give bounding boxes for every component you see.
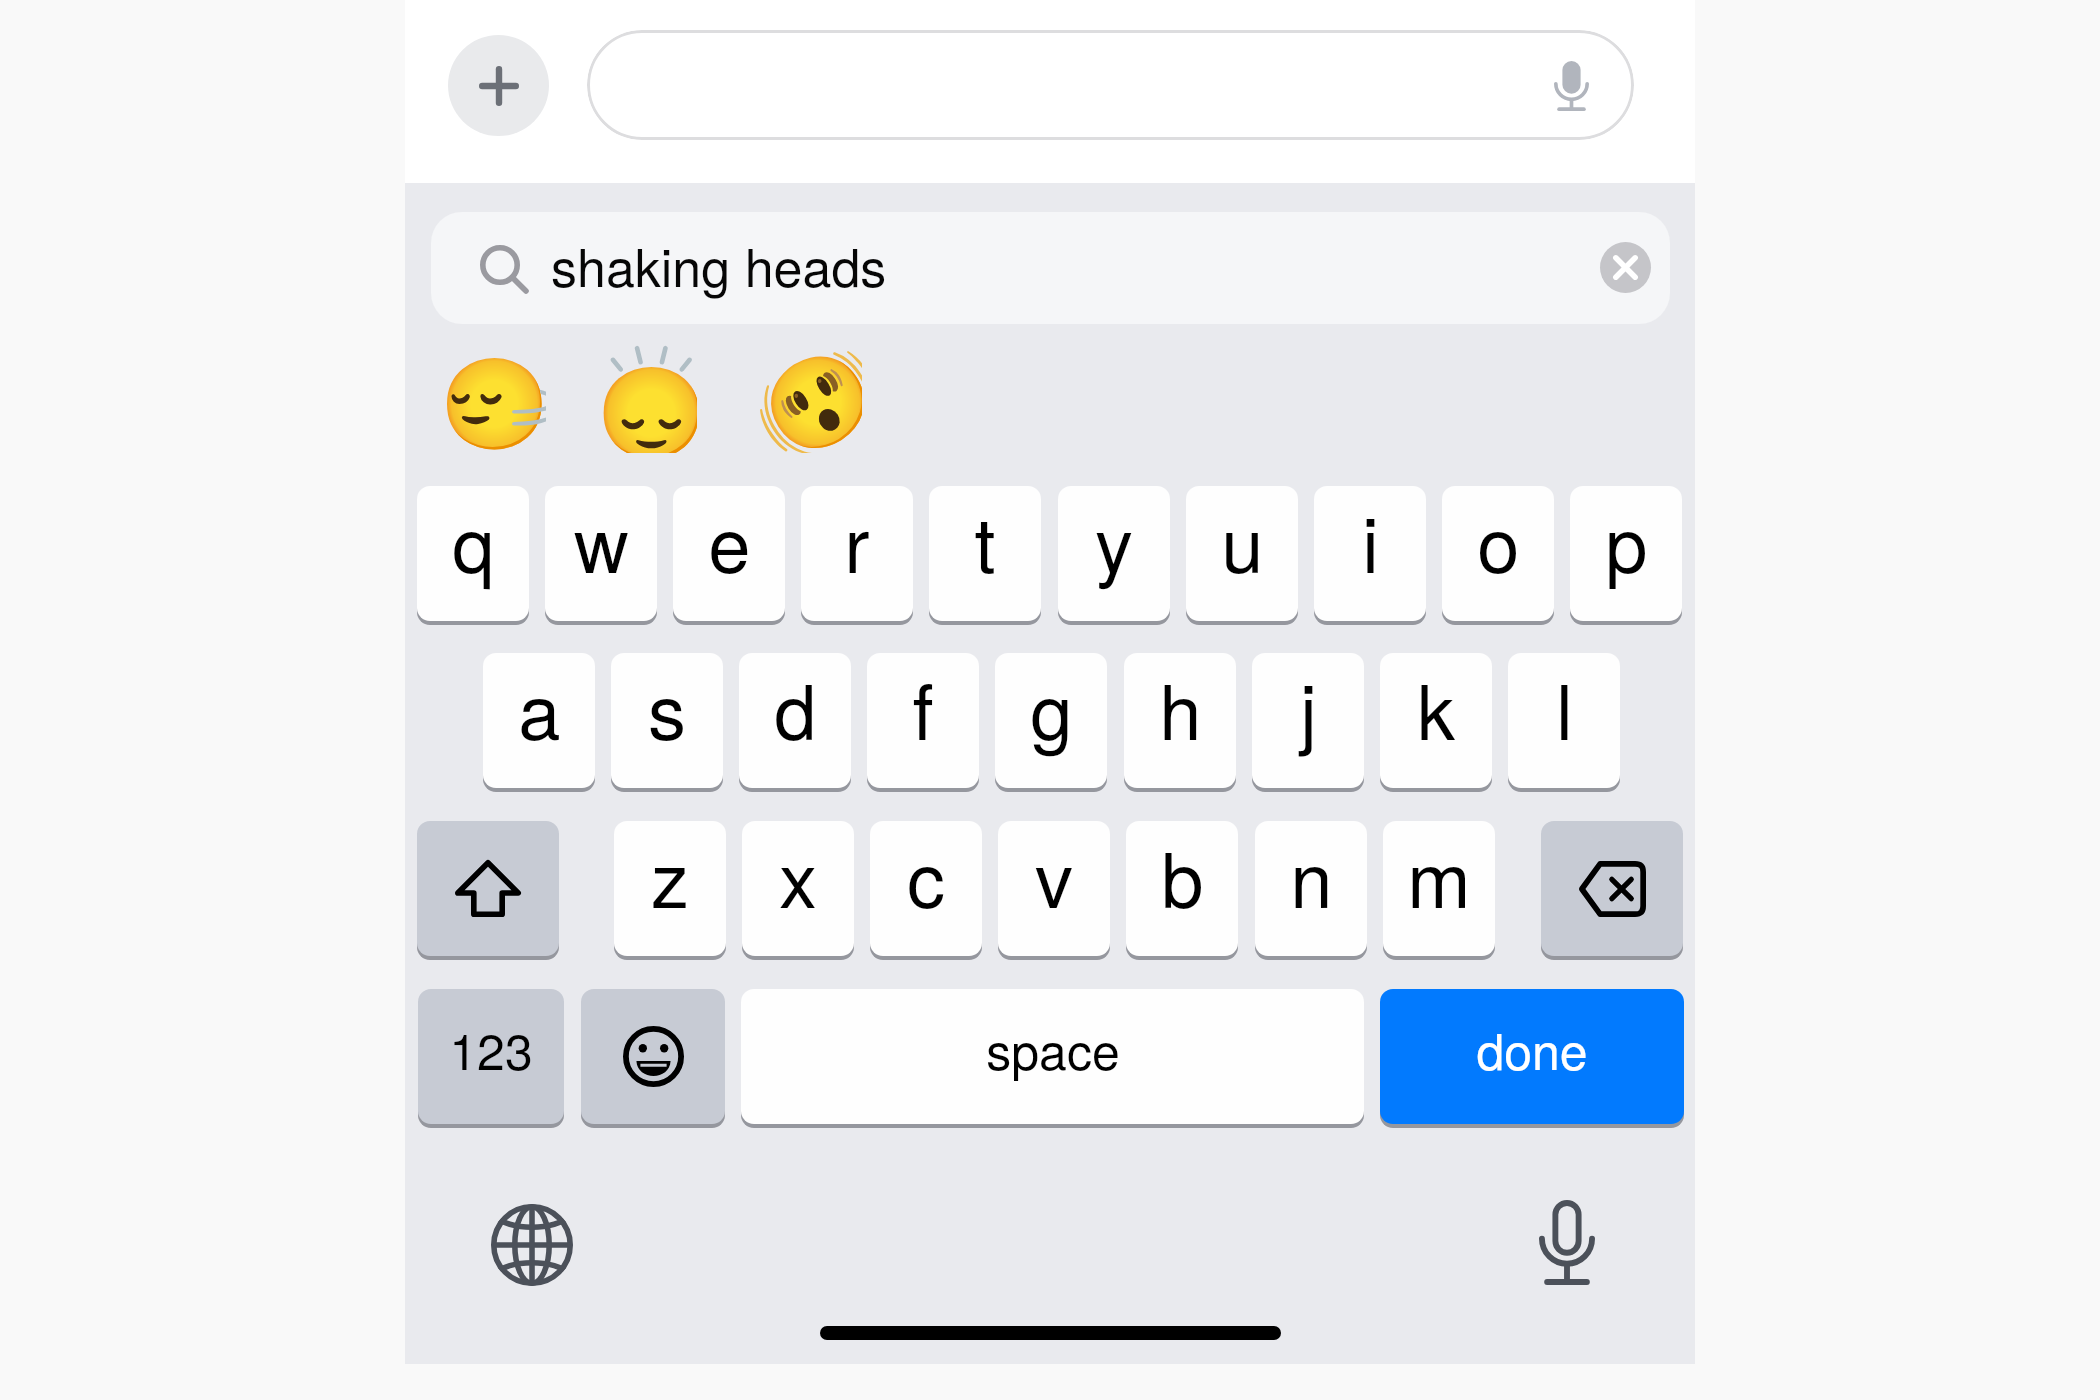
staticText: done [1476, 1013, 1588, 1085]
staticText: g [1030, 653, 1073, 762]
staticText: e [708, 486, 751, 595]
button[interactable]: w [545, 486, 657, 621]
button[interactable]: t [929, 486, 1041, 621]
button[interactable]: 🙂‍↕️ [589, 345, 697, 453]
button[interactable]: v [998, 821, 1110, 956]
staticText: a [518, 653, 561, 762]
button[interactable]: 🙂‍↔️ [438, 345, 546, 453]
button[interactable]: Change keyboard language [487, 1200, 577, 1290]
button[interactable]: done [1380, 989, 1684, 1124]
button[interactable]: i [1314, 486, 1426, 621]
button[interactable]: p [1570, 486, 1682, 621]
staticText: k [1417, 653, 1455, 762]
staticText: 🫨 [754, 345, 862, 453]
button[interactable]: n [1255, 821, 1367, 956]
staticText: p [1605, 486, 1648, 595]
staticText: y [1095, 486, 1133, 595]
button[interactable]: 123 [418, 989, 564, 1124]
staticText: m [1407, 821, 1471, 930]
button[interactable]: r [801, 486, 913, 621]
staticText: n [1290, 821, 1333, 930]
button[interactable]: f [867, 653, 979, 788]
button[interactable]: shaking heads [431, 212, 1670, 324]
staticText: u [1221, 486, 1264, 595]
button[interactable]: z [614, 821, 726, 956]
staticText: l [1556, 653, 1573, 762]
button[interactable]: g [995, 653, 1107, 788]
button[interactable]: space [741, 989, 1364, 1124]
button[interactable]: Dictate [1522, 1197, 1612, 1287]
staticText: i [1362, 486, 1379, 595]
staticText: c [907, 821, 945, 930]
button[interactable]: j [1252, 653, 1364, 788]
staticText: space [986, 1013, 1120, 1085]
staticText: w [574, 486, 629, 595]
staticText: x [779, 821, 817, 930]
staticText: shaking heads [551, 227, 887, 301]
button[interactable]: a [483, 653, 595, 788]
button[interactable]: m [1383, 821, 1495, 956]
button[interactable]: Clear search [1599, 241, 1651, 293]
staticText: r [844, 486, 870, 595]
staticText: t [974, 486, 996, 595]
button[interactable]: d [739, 653, 851, 788]
button[interactable]: l [1508, 653, 1620, 788]
button[interactable]: y [1058, 486, 1170, 621]
button[interactable]: k [1380, 653, 1492, 788]
button[interactable]: o [1442, 486, 1554, 621]
staticText: j [1300, 653, 1317, 762]
staticText: v [1035, 821, 1073, 930]
staticText: 🙂‍↕️ [589, 345, 697, 453]
button[interactable]: 🫨 [754, 345, 862, 453]
button[interactable]: Shift [417, 821, 559, 956]
staticText: f [912, 653, 934, 762]
button[interactable]: Voice input [587, 30, 1634, 140]
staticText: z [651, 821, 689, 930]
staticText: o [1477, 486, 1520, 595]
button[interactable]: b [1126, 821, 1238, 956]
button[interactable]: c [870, 821, 982, 956]
staticText: b [1161, 821, 1204, 930]
staticText: d [774, 653, 817, 762]
button[interactable]: Backspace [1541, 821, 1683, 956]
button[interactable]: x [742, 821, 854, 956]
button[interactable]: s [611, 653, 723, 788]
staticText: h [1159, 653, 1202, 762]
button[interactable]: h [1124, 653, 1236, 788]
staticText: 123 [449, 1013, 533, 1085]
button[interactable]: e [673, 486, 785, 621]
button[interactable]: Emoji keyboard [581, 989, 725, 1124]
button[interactable]: Voice input [1532, 44, 1610, 128]
staticText: q [452, 486, 495, 595]
staticText: 🙂‍↔️ [438, 345, 546, 453]
button[interactable]: q [417, 486, 529, 621]
button[interactable]: Add attachment [448, 35, 549, 136]
button[interactable]: u [1186, 486, 1298, 621]
staticText: s [648, 653, 686, 762]
